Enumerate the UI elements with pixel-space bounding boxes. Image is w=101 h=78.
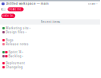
staticText: Design files xyxy=(6,30,25,34)
button[interactable]: Edit xyxy=(1,8,6,11)
button[interactable]: Changelog xyxy=(0,65,100,69)
button[interactable]: Share xyxy=(88,2,97,5)
button[interactable]: Invite teammates xyxy=(1,14,15,18)
button[interactable]: Release notes xyxy=(0,42,100,46)
button[interactable]: Marketing site xyxy=(0,26,100,30)
staticText: Bugs xyxy=(6,38,14,42)
button[interactable]: Deployment xyxy=(0,61,100,65)
button[interactable]: Backlog xyxy=(0,54,100,58)
button[interactable]: Bugs xyxy=(0,38,100,42)
staticText: Invite teammates xyxy=(1,14,15,17)
staticText: Deployment xyxy=(6,61,25,65)
staticText: Recent items xyxy=(40,20,59,24)
staticText: Share xyxy=(88,2,96,5)
button[interactable]: Create new project xyxy=(8,7,24,11)
staticText: Release notes xyxy=(6,42,29,46)
staticText: Marketing site xyxy=(6,26,29,30)
staticText: Backlog xyxy=(9,54,22,58)
staticText: Create new project xyxy=(8,8,24,11)
staticText: Sprint 14 xyxy=(9,50,22,54)
button[interactable]: Design files xyxy=(0,30,100,34)
staticText: Edit xyxy=(1,8,6,11)
staticText: Untitled workspace — main xyxy=(6,2,49,5)
button[interactable]: Sprint 14 xyxy=(0,50,100,54)
staticText: Changelog xyxy=(6,65,23,69)
